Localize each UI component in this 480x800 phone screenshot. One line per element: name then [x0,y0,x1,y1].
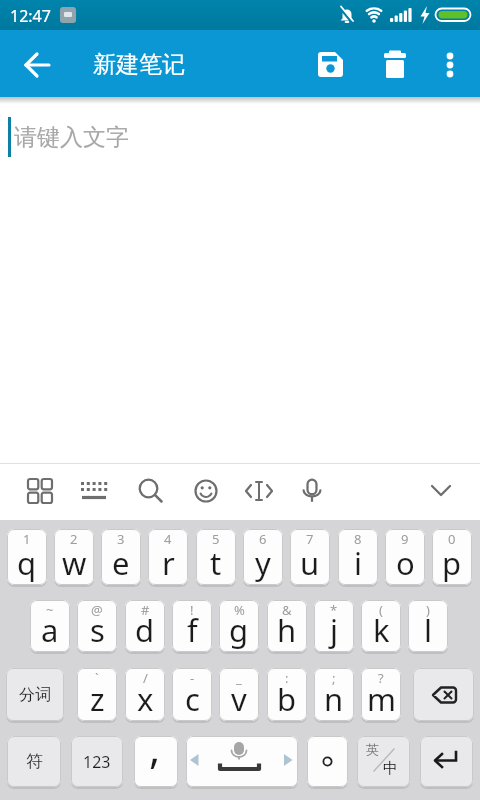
button[interactable] [290,468,334,516]
button[interactable] [16,44,58,86]
button[interactable] [309,44,351,86]
button[interactable]: ; [314,668,354,721]
button[interactable] [134,736,178,787]
staticText: k [373,609,390,651]
staticText: f [187,609,198,651]
staticText: 12:47 [10,5,51,27]
staticText: 分词 [19,685,51,705]
staticText: z [90,678,105,720]
button[interactable]: & [267,600,307,652]
button[interactable]: 分词 [6,668,64,721]
staticText: _ [236,669,242,687]
staticText: w [62,542,87,584]
staticText: p [442,542,462,584]
button[interactable]: 3 [101,529,141,585]
button[interactable]: ) [408,600,448,652]
button[interactable] [184,468,228,516]
staticText: ; [332,669,336,687]
staticText: e [112,542,130,584]
staticText: 符 [26,751,43,772]
staticText: 4 [164,530,172,548]
button[interactable]: 123 [71,736,123,787]
staticText: d [135,609,155,651]
button[interactable]: _ [219,668,259,721]
staticText: s [90,609,105,651]
staticText: % [234,601,245,619]
staticText: 5 [212,530,220,548]
staticText: r [162,542,175,584]
button[interactable]: 5 [196,529,236,585]
button[interactable]: # [125,600,165,652]
button[interactable] [420,736,473,787]
button[interactable]: 0 [432,529,472,585]
staticText: # [141,601,150,619]
button[interactable] [420,468,464,516]
staticText: ) [426,601,430,619]
staticText: a [41,609,59,651]
staticText: 新建笔记 [93,50,185,79]
staticText: t [210,542,222,584]
button[interactable]: 8 [338,529,378,585]
button[interactable] [128,468,172,516]
button[interactable] [374,44,416,86]
button[interactable]: 1 [7,529,47,585]
button[interactable]: : [267,668,307,721]
staticText: 中 [383,759,398,778]
staticText: ` [95,669,99,687]
button[interactable]: ` [77,668,117,721]
staticText: b [277,678,297,720]
staticText: y [255,542,271,584]
staticText: , [149,719,161,776]
staticText: 请键入文字 [14,123,129,152]
staticText: h [277,609,297,651]
staticText: 英 [366,741,379,757]
staticText: v [231,678,247,720]
button[interactable]: @ [77,600,117,652]
button[interactable]: 7 [290,529,330,585]
button[interactable]: ~ [30,600,70,652]
button[interactable]: * [314,600,354,652]
staticText: - [190,669,195,687]
button[interactable]: 符 [7,736,61,787]
button[interactable] [18,468,62,516]
button[interactable] [432,44,470,86]
staticText: 1 [23,530,31,548]
button[interactable]: ! [172,600,212,652]
button[interactable]: 2 [54,529,94,585]
staticText: 2 [70,530,78,548]
button[interactable]: - [172,668,212,721]
button[interactable]: / [125,668,165,721]
button[interactable] [413,668,474,721]
staticText: l [424,609,432,651]
staticText: q [17,542,37,584]
staticText: ( [379,601,383,619]
staticText: ? [378,669,384,687]
staticText: 123 [83,751,111,773]
button[interactable]: ( [361,600,401,652]
button[interactable] [357,736,410,787]
staticText: 0 [448,530,456,548]
staticText: j [330,609,338,651]
staticText: & [282,601,292,619]
button[interactable]: ? [361,668,401,721]
button[interactable]: 9 [385,529,425,585]
staticText: 8 [354,530,362,548]
button[interactable] [237,468,281,516]
staticText: n [324,678,344,720]
button[interactable]: 4 [148,529,188,585]
button[interactable] [307,736,348,787]
staticText: ~ [46,601,54,619]
staticText: 3 [117,530,125,548]
staticText: i [354,542,362,584]
staticText: @ [91,601,103,619]
staticText: g [229,609,249,651]
staticText: u [300,542,320,584]
staticText: x [137,678,154,720]
button[interactable] [72,468,116,516]
button[interactable] [186,736,298,787]
staticText: m [367,678,396,720]
button[interactable]: 6 [243,529,283,585]
staticText: * [330,601,338,619]
staticText: 9 [401,530,409,548]
button[interactable]: % [219,600,259,652]
